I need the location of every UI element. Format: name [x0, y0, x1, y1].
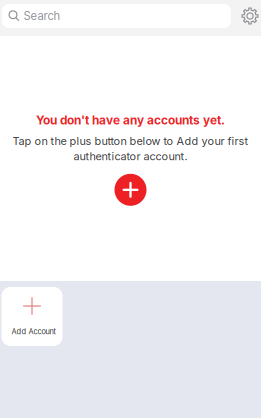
- button[interactable]: Add Account: [1, 287, 62, 346]
- button[interactable]: Add account: [114, 174, 146, 206]
- staticText: You don't have any accounts yet.: [36, 113, 225, 127]
- staticText: Tap on the plus button below to Add your…: [12, 134, 248, 148]
- staticText: authenticator account.: [73, 150, 187, 163]
- staticText: Add Account: [11, 327, 55, 336]
- staticText: Search: [23, 9, 60, 23]
- button[interactable]: Settings: [236, 2, 261, 30]
